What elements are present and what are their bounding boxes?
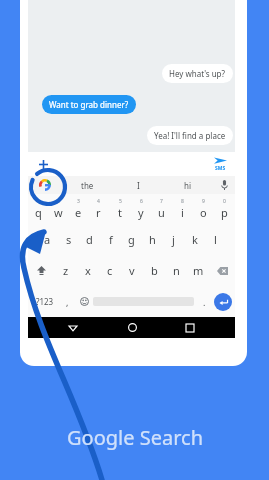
staticText: r [96, 205, 101, 220]
button[interactable]: f [100, 224, 121, 255]
staticText: b [151, 263, 158, 278]
staticText: 2 [57, 198, 60, 205]
staticText: 8 [181, 198, 184, 205]
staticText: e [75, 205, 82, 220]
staticText: 5 [119, 198, 122, 205]
staticText: the [81, 180, 94, 191]
button[interactable]: Send SMS [212, 156, 229, 172]
button[interactable]: a [37, 224, 58, 255]
button[interactable]: x [77, 255, 99, 286]
button[interactable]: Add attachment [34, 155, 52, 173]
staticText: s [66, 232, 72, 247]
staticText: u [158, 205, 165, 220]
staticText: n [173, 263, 180, 278]
button[interactable]: Hey what's up? [162, 64, 233, 83]
staticText: 1 [37, 198, 40, 205]
staticText: 7 [160, 198, 163, 205]
button[interactable]: 7 [151, 194, 172, 224]
staticText: o [200, 205, 207, 220]
button[interactable]: b [143, 255, 165, 286]
staticText: 4 [97, 198, 100, 205]
staticText: . [203, 296, 206, 308]
staticText: k [192, 232, 198, 247]
button[interactable]: Want to grab dinner? [42, 95, 136, 114]
staticText: i [181, 205, 184, 220]
staticText: j [172, 232, 175, 247]
button[interactable]: Home [119, 317, 145, 338]
staticText: q [35, 205, 42, 220]
staticText: t [118, 205, 122, 220]
staticText: 3 [77, 198, 80, 205]
button[interactable]: 6 [130, 194, 151, 224]
button[interactable]: I [113, 176, 163, 194]
button[interactable]: hi [163, 176, 213, 194]
staticText: Want to grab dinner? [49, 99, 129, 110]
button[interactable]: k [184, 224, 205, 255]
staticText: h [149, 232, 156, 247]
button[interactable]: 0 [214, 194, 235, 224]
button[interactable]: 5 [109, 194, 130, 224]
button[interactable]: Emoji [75, 288, 93, 315]
button[interactable]: Recents [177, 317, 203, 338]
button[interactable]: Shift [28, 255, 54, 286]
button[interactable]: v [121, 255, 143, 286]
button[interactable]: 4 [88, 194, 109, 224]
button[interactable]: Back [60, 317, 86, 338]
staticText: z [63, 263, 69, 278]
button[interactable]: the [62, 176, 113, 194]
button[interactable]: . [194, 288, 214, 315]
button[interactable]: 8 [172, 194, 193, 224]
button[interactable]: 9 [193, 194, 214, 224]
staticText: , [66, 296, 69, 308]
staticText: f [109, 232, 113, 247]
staticText: 6 [140, 198, 143, 205]
staticText: hi [184, 180, 192, 191]
button[interactable]: Backspace [209, 255, 235, 286]
staticText: Hey what's up? [169, 68, 226, 79]
staticText: 9 [202, 198, 205, 205]
button[interactable]: h [142, 224, 163, 255]
staticText: d [86, 232, 93, 247]
button[interactable]: l [205, 224, 226, 255]
staticText: m [193, 263, 204, 278]
button[interactable]: g [121, 224, 142, 255]
button[interactable]: c [99, 255, 121, 286]
button[interactable]: , [59, 288, 75, 315]
button[interactable]: m [187, 255, 209, 286]
staticText: x [85, 263, 91, 278]
button[interactable]: 3 [68, 194, 88, 224]
button[interactable]: Enter [214, 293, 232, 311]
staticText: g [128, 232, 135, 247]
staticText: c [107, 263, 113, 278]
staticText: SMS [215, 165, 226, 172]
staticText: Google Search [67, 424, 203, 451]
button[interactable]: 1 [28, 194, 48, 224]
staticText: Yea! I'll find a place [154, 130, 226, 141]
button[interactable]: n [165, 255, 187, 286]
button[interactable]: z [54, 255, 77, 286]
button[interactable]: 2 [48, 194, 68, 224]
staticText: w [54, 205, 63, 220]
button[interactable]: d [79, 224, 100, 255]
button[interactable]: ?123 [31, 288, 59, 315]
staticText: y [138, 205, 144, 220]
staticText: ?123 [36, 296, 54, 307]
staticText: a [44, 232, 51, 247]
staticText: 0 [223, 198, 226, 205]
staticText: I [137, 180, 140, 191]
staticText: p [221, 205, 228, 220]
staticText: l [214, 232, 217, 247]
button[interactable]: Google search [28, 176, 62, 194]
staticText: v [129, 263, 135, 278]
button[interactable]: Yea! I'll find a place [147, 126, 233, 145]
button[interactable]: Voice input [213, 176, 235, 194]
button[interactable]: s [58, 224, 79, 255]
button[interactable]: j [163, 224, 184, 255]
